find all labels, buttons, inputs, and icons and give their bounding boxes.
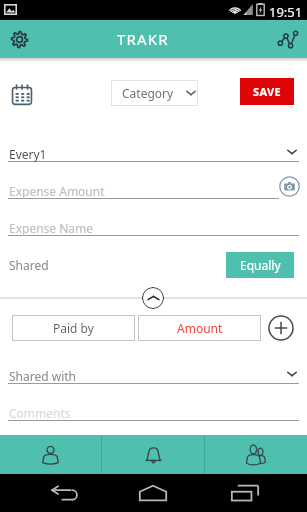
button[interactable]: Notifications xyxy=(102,435,204,474)
button[interactable]: Profile xyxy=(0,435,101,474)
staticText: Shared xyxy=(9,257,49,273)
button[interactable]: Expand xyxy=(284,145,300,159)
staticText: Every1 xyxy=(9,146,47,162)
staticText: Equally xyxy=(240,257,281,273)
staticText: Expense Amount xyxy=(9,183,105,199)
staticText: SAVE xyxy=(253,84,282,99)
button[interactable]: Groups xyxy=(205,435,307,474)
staticText: Category xyxy=(122,85,174,101)
button[interactable]: Take photo xyxy=(279,176,300,197)
staticText: TRAKR xyxy=(117,29,169,49)
button[interactable]: Recents xyxy=(225,474,265,512)
button[interactable]: Amount xyxy=(138,315,261,341)
staticText: Comments xyxy=(9,405,71,421)
button[interactable]: Statistics xyxy=(274,25,302,53)
button[interactable]: SAVE xyxy=(240,78,294,105)
button[interactable]: Settings xyxy=(5,25,33,53)
button[interactable]: Expand xyxy=(284,367,300,381)
button[interactable]: Collapse xyxy=(142,287,164,309)
staticText: Expense Name xyxy=(9,220,94,236)
button[interactable]: Home xyxy=(133,474,173,512)
button[interactable]: Back xyxy=(44,474,84,512)
staticText: Amount xyxy=(177,320,223,336)
staticText: Shared with xyxy=(9,368,76,384)
button[interactable]: Add xyxy=(268,315,294,341)
button[interactable]: Equally xyxy=(226,252,294,278)
button[interactable]: Paid by xyxy=(12,315,135,341)
button[interactable]: Category xyxy=(111,80,198,106)
button[interactable]: Pick date xyxy=(11,84,33,105)
staticText: Paid by xyxy=(53,320,94,336)
staticText: 19:51 xyxy=(269,3,303,21)
